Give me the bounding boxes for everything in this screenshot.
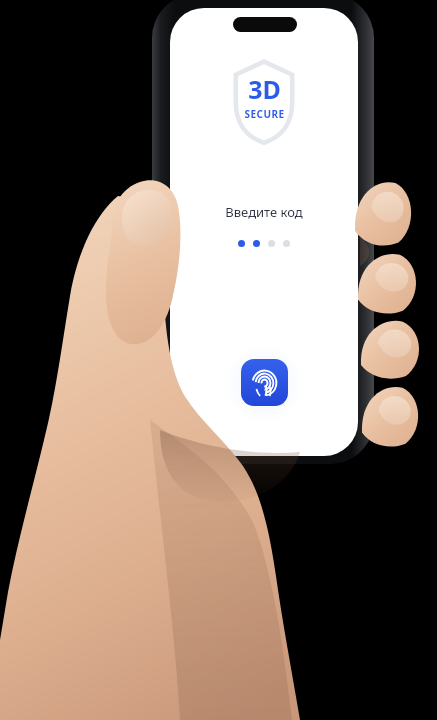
- staticText: Введите код: [225, 203, 303, 221]
- staticText: SECURE: [244, 107, 285, 121]
- staticText: 3D: [248, 72, 281, 106]
- button[interactable]: Fingerprint authentication: [241, 359, 288, 406]
